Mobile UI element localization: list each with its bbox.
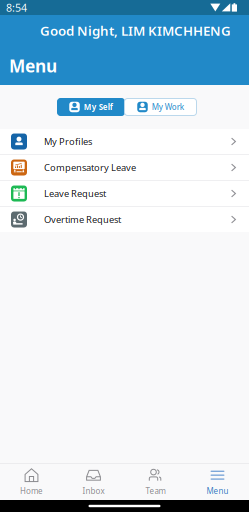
staticText: My Profiles: [44, 135, 92, 148]
button[interactable]: Inbox: [62, 464, 124, 500]
button[interactable]: Compensatory Leave: [0, 155, 249, 180]
button[interactable]: Menu: [186, 464, 248, 500]
button[interactable]: Team: [124, 464, 186, 500]
staticText: Team: [145, 486, 165, 496]
staticText: 8:54: [6, 0, 27, 15]
staticText: Menu: [9, 54, 57, 77]
staticText: Menu: [206, 486, 228, 496]
staticText: Inbox: [82, 486, 104, 496]
staticText: Overtime Request: [44, 213, 121, 226]
button[interactable]: Overtime Request: [0, 207, 249, 232]
staticText: Compensatory Leave: [44, 161, 136, 174]
button[interactable]: My Self: [57, 98, 124, 115]
staticText: My Work: [152, 102, 184, 112]
staticText: Leave Request: [44, 187, 106, 200]
staticText: Home: [20, 486, 43, 496]
staticText: My Self: [84, 102, 113, 112]
button[interactable]: My Profiles: [0, 129, 249, 154]
button[interactable]: My Work: [124, 98, 196, 115]
button[interactable]: Home: [0, 464, 62, 500]
staticText: Good Night, LIM KIMCHHENG: [40, 22, 231, 39]
button[interactable]: Leave Request: [0, 181, 249, 206]
